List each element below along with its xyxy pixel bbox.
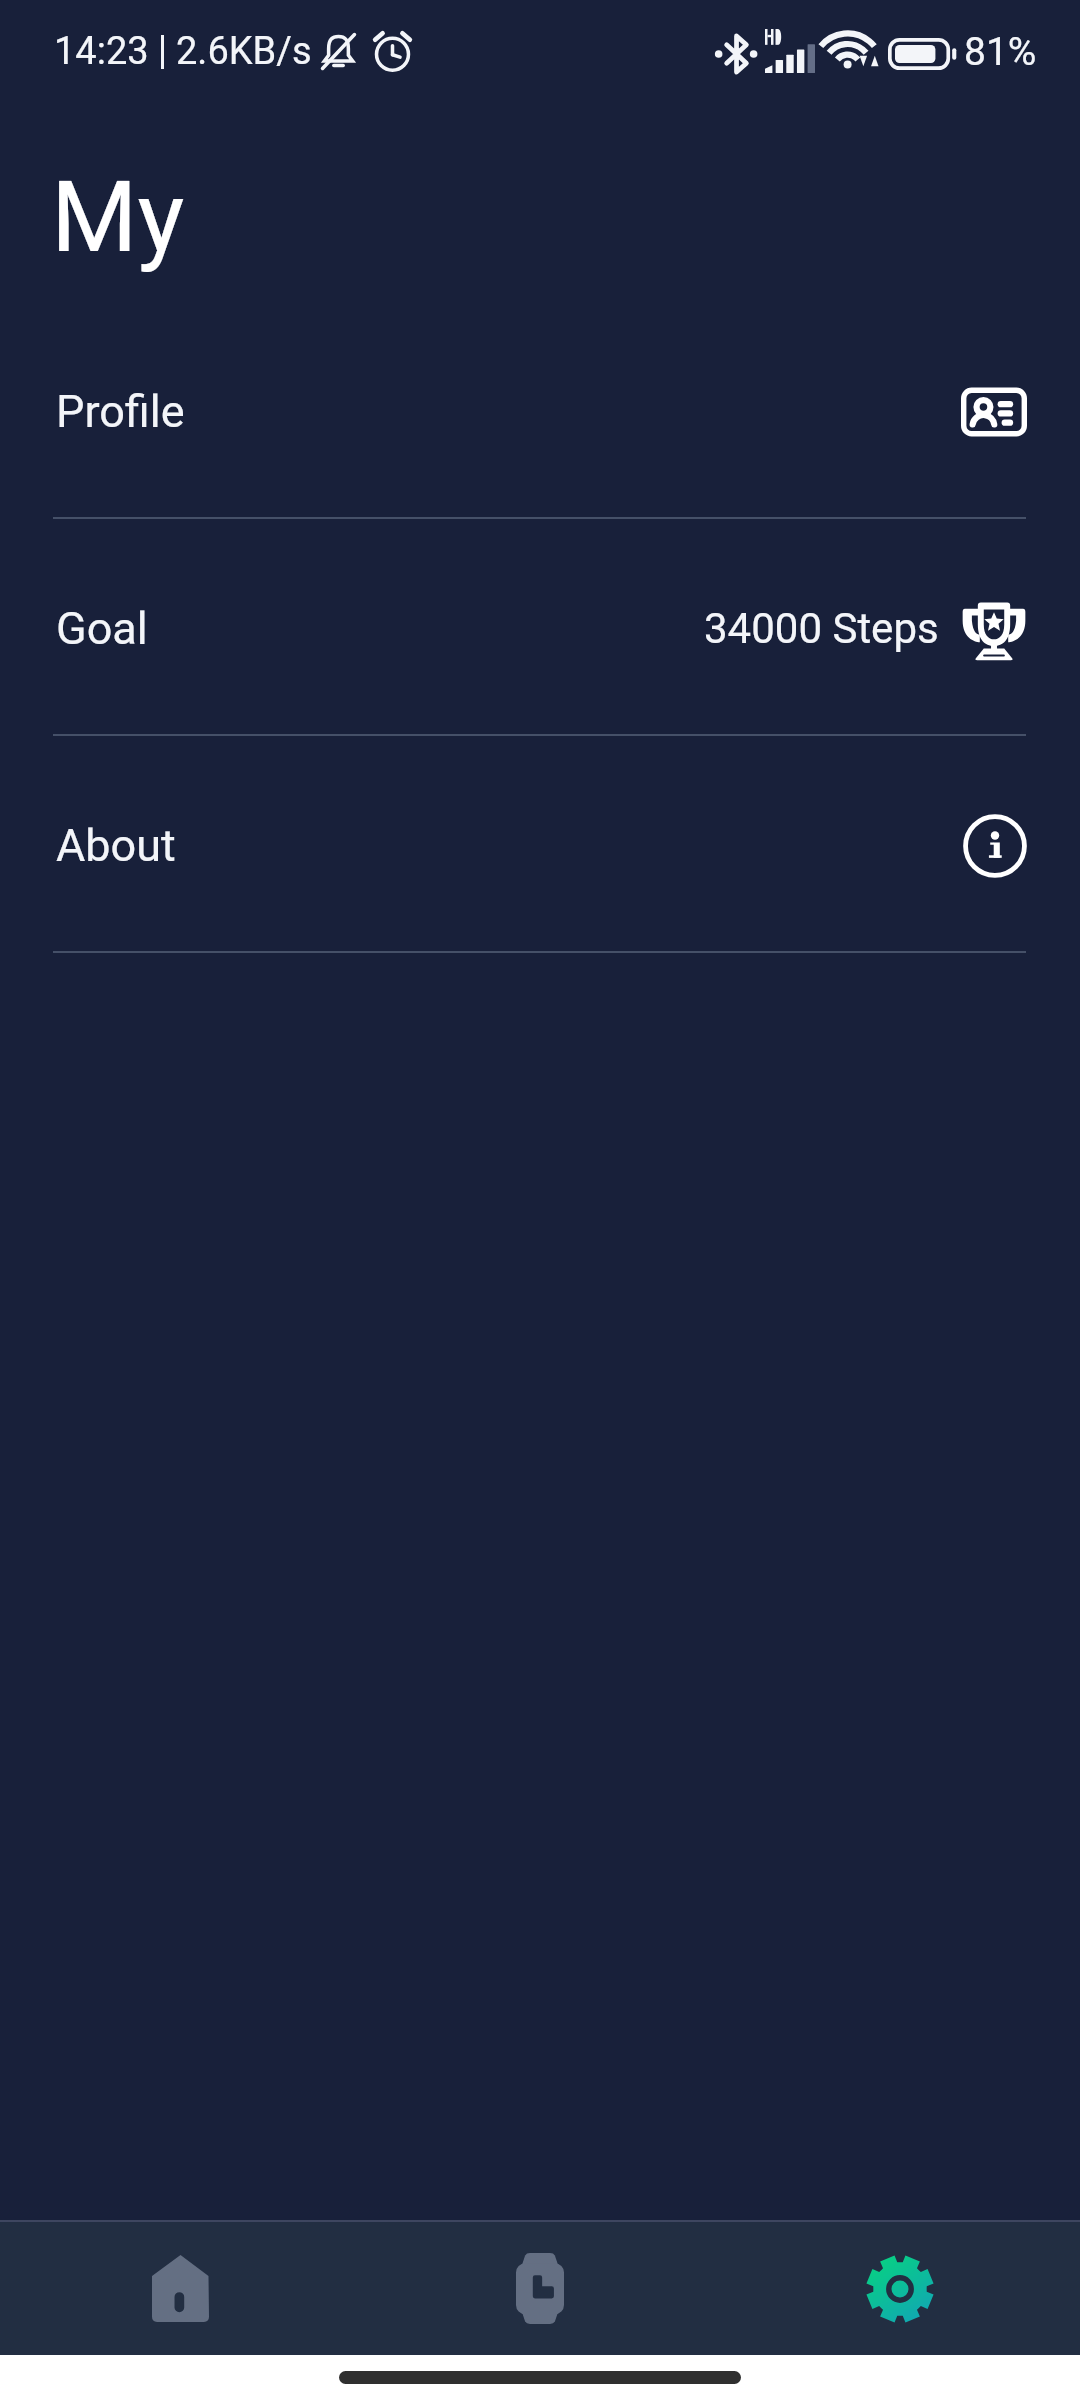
button[interactable]: Settings [720,2222,1080,2355]
other: About [963,814,1027,878]
other: Watch [516,2253,564,2324]
staticText: Goal [56,602,148,655]
button[interactable]: Watch [360,2222,720,2355]
button[interactable]: About [0,736,1080,953]
other: Home [152,2255,209,2322]
staticText: 34000 Steps [704,604,939,653]
button[interactable]: Home [0,2222,360,2355]
other: Profile [961,379,1027,445]
staticText: Profile [56,385,185,438]
staticText: 2.6KB/s [176,29,312,74]
button[interactable]: Goal [0,519,1080,736]
button[interactable]: Profile [0,302,1080,519]
staticText: About [56,819,176,872]
other: Goal [961,596,1027,662]
staticText: My [51,159,185,275]
staticText: 14:23 [54,29,149,74]
other: Settings [866,2254,934,2324]
staticText: 81% [964,29,1037,75]
